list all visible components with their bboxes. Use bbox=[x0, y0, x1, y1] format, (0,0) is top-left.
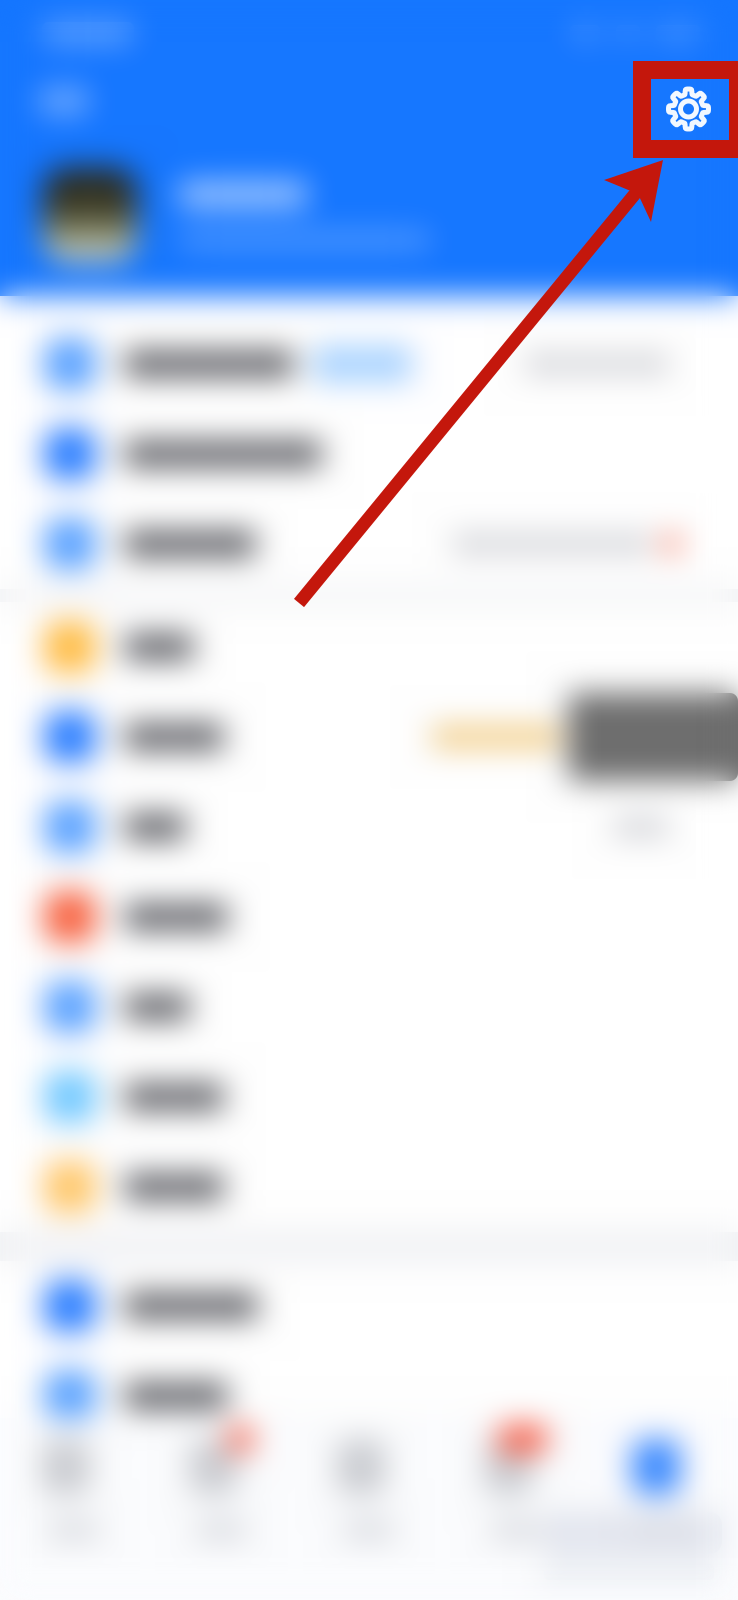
button[interactable] bbox=[0, 1142, 738, 1232]
button[interactable]: Tab bbox=[590, 1418, 738, 1600]
button[interactable] bbox=[0, 872, 738, 962]
button[interactable] bbox=[0, 692, 738, 782]
button[interactable] bbox=[0, 782, 738, 872]
button[interactable] bbox=[0, 1261, 738, 1351]
button[interactable]: Tab bbox=[148, 1418, 295, 1600]
button[interactable] bbox=[0, 602, 738, 692]
button[interactable] bbox=[0, 136, 738, 260]
button[interactable] bbox=[0, 1351, 738, 1441]
button[interactable] bbox=[0, 1052, 738, 1142]
button[interactable]: Tab bbox=[295, 1418, 443, 1600]
button[interactable] bbox=[0, 962, 738, 1052]
button[interactable]: Settings bbox=[634, 66, 704, 136]
button[interactable] bbox=[0, 499, 738, 589]
button[interactable] bbox=[0, 319, 738, 409]
button[interactable] bbox=[0, 409, 738, 499]
button[interactable]: Tab bbox=[443, 1418, 590, 1600]
button[interactable]: Tab bbox=[0, 1418, 148, 1600]
